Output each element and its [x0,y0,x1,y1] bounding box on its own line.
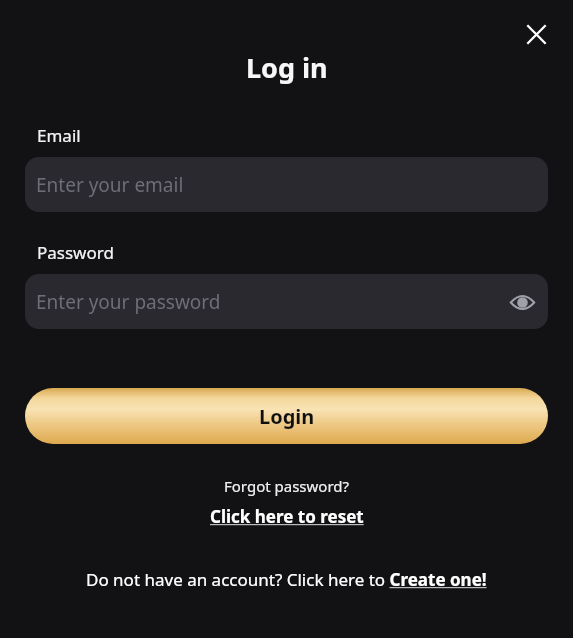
staticText: Login [259,403,315,430]
button[interactable]: Enter your email [25,157,548,212]
staticText: Enter your password [36,289,221,315]
staticText: Log in [246,49,328,86]
button[interactable]: Login [25,388,548,444]
button[interactable]: Do not have an account? Click here to Cr… [86,568,487,591]
button[interactable]: Show password [500,280,544,324]
staticText: Forgot password? [224,476,350,496]
staticText: Do not have an account? Click here to Cr… [86,568,487,591]
staticText: Email [37,124,81,147]
button[interactable]: Close [514,12,558,56]
button[interactable]: Enter your password [25,274,548,329]
staticText: Enter your email [36,172,184,198]
staticText: Password [37,241,114,264]
staticText: Click here to reset [210,505,364,528]
button[interactable]: Click here to reset [210,505,364,528]
